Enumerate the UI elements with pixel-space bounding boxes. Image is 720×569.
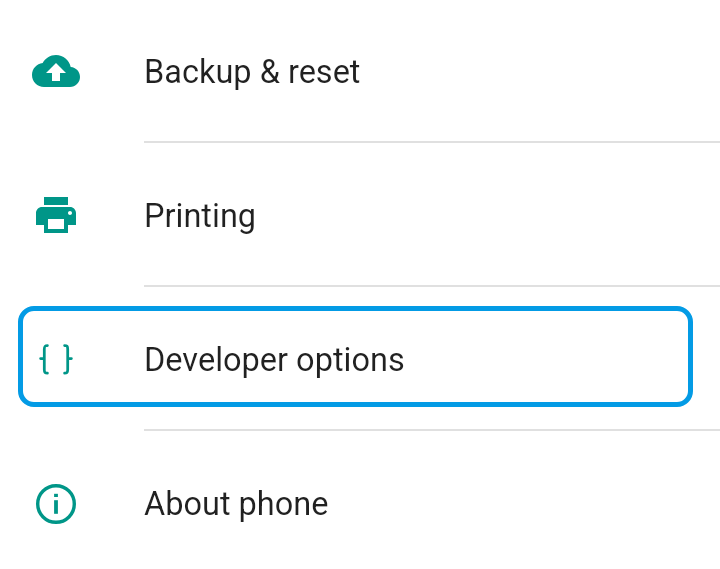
staticText: Developer options — [144, 341, 405, 379]
staticText: About phone — [144, 485, 329, 523]
button[interactable]: Printing — [0, 144, 720, 286]
button[interactable]: Developer options — [0, 288, 720, 430]
button[interactable]: Backup & reset — [0, 0, 720, 142]
button[interactable]: About phone — [0, 432, 720, 569]
staticText: Printing — [144, 197, 257, 235]
staticText: Backup & reset — [144, 53, 361, 91]
